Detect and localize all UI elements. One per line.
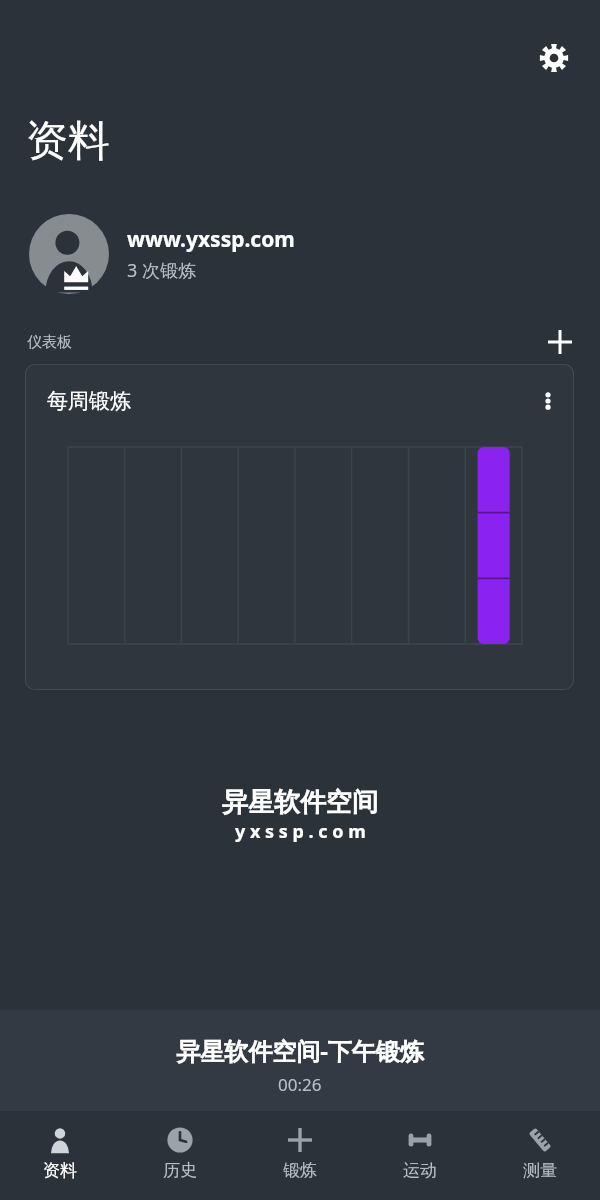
staticText: 仪表板 — [27, 333, 72, 352]
button[interactable]: Add — [536, 320, 584, 364]
button[interactable]: www.yxssp.com — [0, 210, 600, 298]
staticText: 异星软件空间-下午锻炼 — [176, 1034, 424, 1067]
staticText: y x s s p . c o m — [235, 819, 366, 844]
staticText: 运动 — [403, 1160, 437, 1181]
button[interactable]: 资料 — [0, 1111, 120, 1200]
staticText: 锻炼 — [283, 1160, 317, 1181]
staticText: 3 次锻炼 — [127, 258, 196, 283]
staticText: www.yxssp.com — [127, 225, 295, 254]
button[interactable]: 锻炼 — [240, 1111, 360, 1200]
staticText: 异星软件空间 — [222, 786, 378, 819]
button[interactable]: 异星软件空间-下午锻炼 — [0, 1010, 600, 1111]
staticText: 资料 — [26, 115, 110, 168]
staticText: 历史 — [163, 1160, 197, 1181]
staticText: 00:26 — [278, 1073, 322, 1096]
button[interactable]: 历史 — [120, 1111, 240, 1200]
staticText: 测量 — [523, 1160, 557, 1181]
staticText: 资料 — [43, 1160, 77, 1181]
button[interactable]: 运动 — [360, 1111, 480, 1200]
staticText: 每周锻炼 — [47, 388, 131, 414]
button[interactable]: More options — [526, 379, 570, 423]
button[interactable]: 每周锻炼 — [25, 364, 574, 690]
button[interactable]: Settings — [526, 30, 582, 86]
button[interactable]: 测量 — [480, 1111, 600, 1200]
